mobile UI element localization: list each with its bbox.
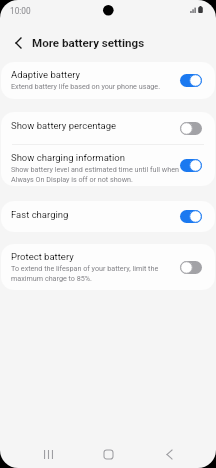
staticText: Show charging information <box>11 152 125 163</box>
staticText: More battery settings <box>32 36 145 50</box>
button[interactable]: Show battery percentage <box>1 112 215 144</box>
button[interactable]: Back <box>157 442 181 467</box>
button[interactable]: Show charging information <box>1 145 215 186</box>
staticText: 10:00 <box>10 6 31 16</box>
button[interactable]: Fast charging <box>1 201 215 232</box>
staticText: Protect battery <box>11 251 74 262</box>
staticText: Adaptive battery <box>11 69 80 80</box>
staticText: Extend battery life based on your phone … <box>11 82 161 90</box>
button[interactable]: Adaptive battery <box>1 62 215 99</box>
staticText: Show battery percentage <box>11 120 117 131</box>
staticText: Fast charging <box>11 209 69 220</box>
button[interactable]: Back <box>5 30 31 56</box>
button[interactable]: Home <box>96 442 121 467</box>
button[interactable]: Protect battery <box>1 244 215 290</box>
staticText: Show battery level and estimated time un… <box>11 165 183 183</box>
button[interactable]: Recents <box>36 442 60 467</box>
staticText: To extend the lifespan of your battery, … <box>11 264 183 282</box>
